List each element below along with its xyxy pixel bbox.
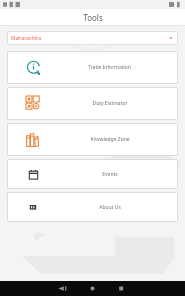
staticText: Tools xyxy=(83,12,103,23)
other: Trade Information xyxy=(26,60,41,75)
button[interactable]: Maharashtra xyxy=(7,31,178,45)
other: About Us xyxy=(28,202,38,212)
staticText: Duty Estimator xyxy=(92,100,128,107)
button[interactable]: About Us xyxy=(7,192,178,222)
other: Events xyxy=(28,169,39,180)
other: Duty Estimator xyxy=(26,96,41,111)
button[interactable]: Duty Estimator xyxy=(7,87,178,120)
staticText: About Us xyxy=(99,204,121,211)
button[interactable]: Trade Information xyxy=(7,51,178,84)
button[interactable]: Events xyxy=(7,159,178,189)
other: Knowledge Zone xyxy=(26,132,41,147)
button[interactable]: Knowledge Zone xyxy=(7,123,178,156)
staticText: Maharashtra xyxy=(11,35,42,42)
staticText: Events xyxy=(102,171,118,178)
staticText: Knowledge Zone xyxy=(90,136,130,143)
staticText: Trade Information xyxy=(88,64,131,71)
